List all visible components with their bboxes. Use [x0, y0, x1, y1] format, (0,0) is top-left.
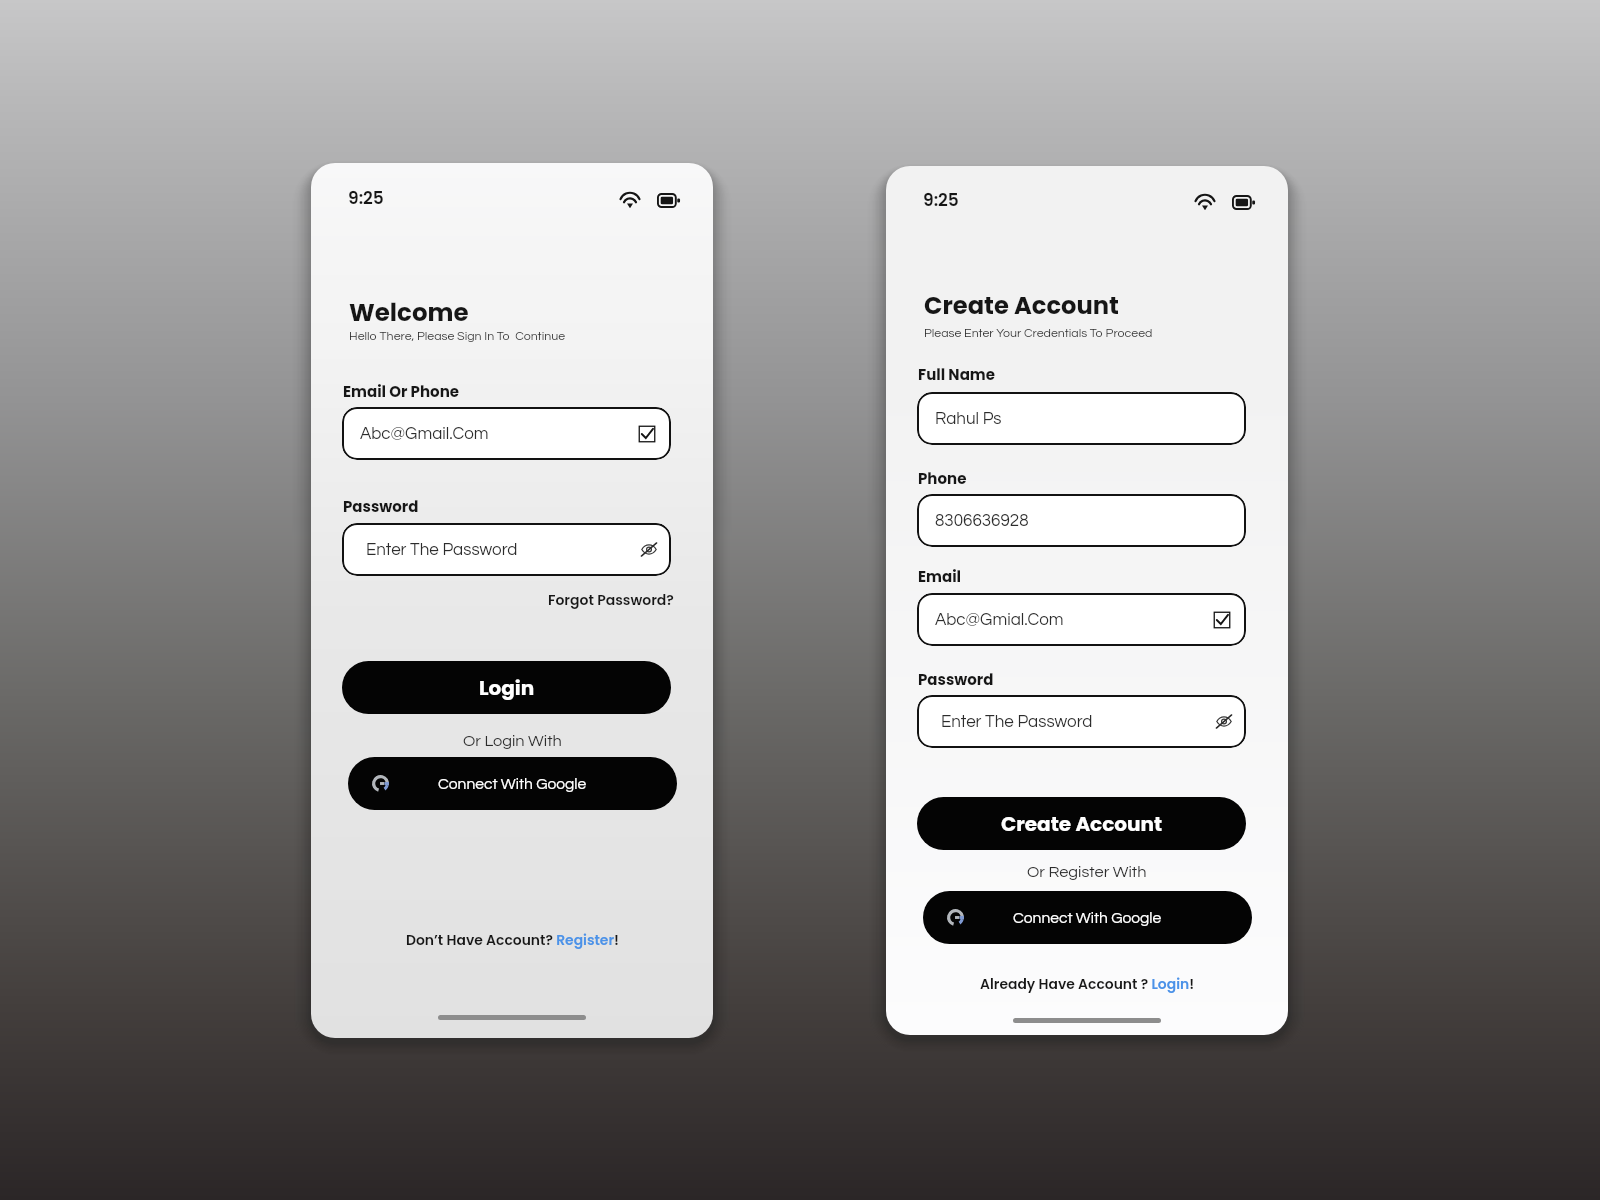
staticText: Rahul Ps: [935, 410, 1002, 428]
staticText: Connect With Google: [438, 776, 587, 792]
button[interactable]: Connect With Google: [923, 891, 1252, 944]
button[interactable]: Rahul Ps: [917, 392, 1246, 445]
staticText: Please Enter Your Credentials To Proceed: [924, 327, 1153, 340]
button[interactable]: Abc@Gmail.Com: [342, 407, 671, 460]
button[interactable]: Enter The Password: [917, 695, 1246, 748]
staticText: Password: [343, 496, 419, 517]
staticText: Abc@Gmial.Com: [935, 611, 1064, 629]
other: Google: [372, 775, 389, 792]
other: Wi-Fi: [1194, 194, 1216, 210]
staticText: Password: [918, 669, 994, 690]
button[interactable]: Verified: [637, 424, 671, 444]
staticText: Login: [479, 674, 535, 702]
staticText: Email Or Phone: [343, 381, 459, 402]
other: Google: [947, 909, 964, 926]
staticText: Connect With Google: [1013, 910, 1162, 926]
staticText: Create Account: [1001, 810, 1163, 838]
button[interactable]: Login: [342, 661, 671, 714]
staticText: Or Login With: [463, 733, 562, 750]
staticText: Welcome: [349, 295, 469, 329]
other: Show password: [1216, 715, 1232, 728]
other: Battery: [1232, 195, 1255, 210]
staticText: Enter The Password: [941, 713, 1093, 731]
staticText: Enter The Password: [366, 541, 518, 559]
other: Verified: [1212, 610, 1232, 630]
button[interactable]: Show password: [641, 543, 671, 556]
other: Verified: [637, 424, 657, 444]
button[interactable]: Already Have Account ? Login!: [980, 974, 1195, 993]
other: Battery: [657, 193, 680, 208]
staticText: Hello There, Please Sign In To Continue: [349, 330, 566, 343]
staticText: 8306636928: [935, 512, 1029, 530]
other: Wi-Fi: [619, 192, 641, 208]
staticText: Or Register With: [1027, 864, 1147, 881]
staticText: Create Account: [924, 289, 1119, 323]
other: Show password: [641, 543, 657, 556]
button[interactable]: Abc@Gmial.Com: [917, 593, 1246, 646]
staticText: 9:25: [348, 186, 384, 210]
button[interactable]: Create Account: [917, 797, 1246, 850]
button[interactable]: Enter The Password: [342, 523, 671, 576]
button[interactable]: Show password: [1216, 715, 1246, 728]
staticText: 9:25: [923, 188, 959, 212]
staticText: Full Name: [918, 364, 995, 385]
button[interactable]: Connect With Google: [348, 757, 677, 810]
staticText: Abc@Gmail.Com: [360, 425, 489, 443]
button[interactable]: Verified: [1212, 610, 1246, 630]
button[interactable]: Forgot Password?: [548, 590, 674, 610]
button[interactable]: 8306636928: [917, 494, 1246, 547]
staticText: Email: [918, 566, 962, 587]
staticText: Phone: [918, 468, 967, 489]
button[interactable]: Don’t Have Account? Register!: [406, 930, 619, 949]
